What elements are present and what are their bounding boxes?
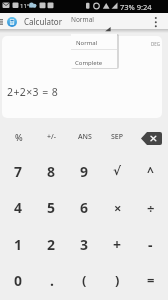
button[interactable]: 0 bbox=[2, 262, 35, 298]
button[interactable]: +/- bbox=[35, 120, 68, 154]
staticText: 73% 9:24 bbox=[120, 2, 152, 12]
button[interactable]: 3 bbox=[68, 227, 101, 262]
staticText: Complete bbox=[75, 59, 103, 67]
staticText: 2 bbox=[47, 235, 56, 254]
button[interactable]: + bbox=[101, 227, 134, 262]
staticText: 9 bbox=[80, 162, 89, 181]
staticText: √ bbox=[113, 164, 122, 178]
staticText: 8 bbox=[47, 162, 56, 181]
button[interactable]: 2 bbox=[35, 227, 68, 262]
staticText: Normal bbox=[71, 15, 94, 24]
staticText: ANS bbox=[78, 132, 92, 142]
staticText: Normal bbox=[76, 39, 98, 47]
button[interactable]: ) bbox=[101, 262, 134, 298]
button[interactable]: Normal bbox=[66, 13, 114, 29]
button[interactable]: - bbox=[134, 227, 167, 262]
staticText: DEG bbox=[151, 41, 161, 47]
button[interactable]: % bbox=[2, 120, 35, 154]
button[interactable]: Normal bbox=[71, 34, 117, 49]
button[interactable]: 5 bbox=[35, 188, 68, 227]
staticText: × bbox=[114, 199, 122, 217]
button[interactable]: ( bbox=[68, 262, 101, 298]
staticText: . bbox=[50, 271, 54, 290]
staticText: % bbox=[15, 131, 23, 143]
button[interactable]: 8 bbox=[35, 154, 68, 188]
staticText: 11° bbox=[20, 2, 30, 10]
staticText: 5 bbox=[47, 198, 56, 217]
button[interactable]: 4 bbox=[2, 188, 35, 227]
button[interactable]: 9 bbox=[68, 154, 101, 188]
button[interactable] bbox=[134, 120, 167, 154]
staticText: 1 bbox=[14, 235, 23, 254]
staticText: ^ bbox=[147, 163, 154, 179]
staticText: 4 bbox=[14, 198, 23, 217]
staticText: ) bbox=[115, 271, 120, 289]
button[interactable] bbox=[148, 13, 164, 29]
button[interactable]: . bbox=[35, 262, 68, 298]
staticText: + bbox=[113, 235, 122, 254]
staticText: 3 bbox=[80, 235, 89, 254]
staticText: SEP bbox=[111, 132, 124, 142]
staticText: 0 bbox=[14, 271, 23, 290]
staticText: +/- bbox=[47, 132, 56, 142]
staticText: 2+2×3 = 8 bbox=[7, 85, 59, 99]
button[interactable]: ^ bbox=[134, 154, 167, 188]
button[interactable]: 7 bbox=[2, 154, 35, 188]
button[interactable]: ANS bbox=[68, 120, 101, 154]
staticText: Calculator bbox=[24, 16, 62, 27]
staticText: = bbox=[147, 271, 155, 289]
button[interactable]: = bbox=[134, 262, 167, 298]
staticText: - bbox=[148, 235, 153, 254]
button[interactable]: 1 bbox=[2, 227, 35, 262]
button[interactable]: × bbox=[101, 188, 134, 227]
staticText: ÷ bbox=[147, 199, 155, 217]
button[interactable]: 6 bbox=[68, 188, 101, 227]
staticText: ( bbox=[82, 271, 87, 289]
button[interactable]: ÷ bbox=[134, 188, 167, 227]
staticText: 7 bbox=[14, 162, 23, 181]
button[interactable]: Complete bbox=[71, 50, 117, 68]
button[interactable]: √ bbox=[101, 154, 134, 188]
button[interactable]: SEP bbox=[101, 120, 134, 154]
staticText: 6 bbox=[80, 198, 89, 217]
